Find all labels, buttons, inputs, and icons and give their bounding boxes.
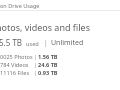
staticText: 1.56 TB <box>38 53 58 61</box>
staticText: 784 Videos <box>0 61 29 69</box>
button[interactable]: 784 Videos <box>0 61 120 69</box>
button[interactable]: 11116 Files <box>0 69 120 77</box>
staticText: | <box>34 69 38 77</box>
staticText: 0.93 TB <box>38 69 58 77</box>
staticText: Unlimited <box>51 38 84 48</box>
staticText: 5.5 TB <box>0 37 23 48</box>
staticText: 11116 Files <box>0 69 30 77</box>
staticText: 0025 Photos <box>0 53 33 61</box>
staticText: | <box>44 38 48 47</box>
staticText: | <box>34 61 38 69</box>
button[interactable]: 0025 Photos <box>0 53 120 61</box>
staticText: hotos, videos and files <box>0 21 90 33</box>
staticText: on Drive Usage <box>0 2 40 9</box>
staticText: used <box>26 40 39 48</box>
staticText: | <box>34 53 38 61</box>
staticText: 24.6 TB <box>38 61 58 69</box>
